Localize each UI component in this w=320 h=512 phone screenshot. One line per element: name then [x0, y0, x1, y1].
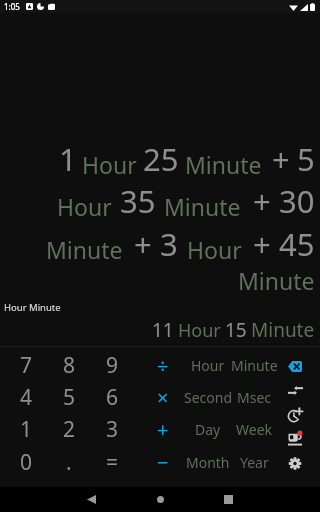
- staticText: ÷: [157, 352, 169, 379]
- button[interactable]: Add time: [283, 403, 307, 426]
- staticText: 9: [106, 351, 119, 380]
- staticText: 6: [106, 383, 119, 412]
- staticText: 11: [152, 317, 174, 343]
- staticText: +: [157, 416, 169, 443]
- staticText: 25: [143, 138, 179, 180]
- staticText: Minute: [164, 191, 241, 222]
- staticText: Minute: [231, 356, 278, 375]
- button[interactable]: 7: [4, 349, 48, 381]
- staticText: Week: [236, 420, 273, 439]
- button[interactable]: Home: [152, 487, 168, 512]
- staticText: .: [66, 448, 72, 477]
- button[interactable]: =: [89, 446, 135, 478]
- staticText: 2: [63, 415, 76, 444]
- button[interactable]: ÷: [140, 349, 186, 381]
- staticText: Msec: [237, 388, 272, 407]
- button[interactable]: Convert units: [283, 379, 307, 402]
- staticText: 4: [20, 383, 33, 412]
- button[interactable]: Backspace: [283, 355, 307, 378]
- staticText: Minute: [251, 317, 315, 343]
- staticText: 30: [279, 180, 315, 222]
- staticText: −: [157, 449, 169, 476]
- button[interactable]: Settings: [283, 452, 307, 475]
- button[interactable]: 6: [89, 381, 135, 413]
- button[interactable]: 3: [89, 413, 135, 445]
- staticText: Year: [240, 453, 269, 472]
- button[interactable]: 5: [47, 381, 91, 413]
- staticText: Minute: [46, 234, 123, 265]
- staticText: Hour: [57, 191, 112, 222]
- button[interactable]: +: [140, 413, 186, 445]
- staticText: 7: [20, 351, 33, 380]
- staticText: Hour: [178, 318, 221, 343]
- button[interactable]: Hour: [182, 349, 234, 381]
- staticText: 3: [106, 415, 119, 444]
- staticText: Minute: [238, 265, 315, 296]
- button[interactable]: Second: [182, 381, 234, 413]
- staticText: 5: [297, 138, 315, 180]
- staticText: 1: [59, 138, 77, 180]
- button[interactable]: Minute: [228, 349, 280, 381]
- button[interactable]: Year: [228, 446, 280, 478]
- staticText: 1: [20, 415, 33, 444]
- staticText: Hour: [187, 234, 242, 265]
- button[interactable]: Recents: [220, 487, 236, 512]
- staticText: +: [253, 223, 271, 265]
- button[interactable]: Month: [182, 446, 234, 478]
- button[interactable]: 2: [47, 413, 91, 445]
- staticText: +: [272, 138, 290, 180]
- staticText: 0: [20, 448, 33, 477]
- button[interactable]: ×: [140, 381, 186, 413]
- button[interactable]: Coffee break: [283, 427, 307, 450]
- staticText: 8: [63, 351, 76, 380]
- button[interactable]: Week: [228, 413, 280, 445]
- staticText: 5: [63, 383, 76, 412]
- staticText: =: [106, 448, 119, 477]
- staticText: Hour Minute: [4, 301, 61, 314]
- staticText: Day: [195, 420, 221, 439]
- button[interactable]: Msec: [228, 381, 280, 413]
- button[interactable]: Back: [83, 487, 99, 512]
- staticText: ×: [157, 384, 169, 411]
- button[interactable]: −: [140, 446, 186, 478]
- staticText: 45: [279, 223, 315, 265]
- staticText: Hour: [82, 149, 137, 180]
- button[interactable]: .: [47, 446, 91, 478]
- staticText: +: [134, 223, 152, 265]
- staticText: 35: [120, 180, 156, 222]
- button[interactable]: 9: [89, 349, 135, 381]
- staticText: 15: [225, 317, 247, 343]
- staticText: Second: [184, 388, 233, 407]
- staticText: 1:05: [4, 1, 20, 12]
- button[interactable]: 8: [47, 349, 91, 381]
- button[interactable]: Day: [182, 413, 234, 445]
- staticText: +: [253, 180, 271, 222]
- button[interactable]: 0: [4, 446, 48, 478]
- button[interactable]: 1: [4, 413, 48, 445]
- staticText: 3: [160, 223, 178, 265]
- staticText: Month: [186, 453, 230, 472]
- staticText: Hour: [191, 356, 225, 375]
- button[interactable]: 4: [4, 381, 48, 413]
- staticText: Minute: [185, 149, 262, 180]
